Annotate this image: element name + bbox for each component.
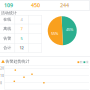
staticText: 12 bbox=[19, 45, 23, 50]
staticText: 在线 bbox=[3, 17, 11, 22]
button[interactable]: 450 bbox=[28, 1, 55, 10]
staticText: 0 bbox=[0, 81, 2, 85]
staticText: 活动统计 bbox=[1, 10, 17, 15]
staticText: 244 bbox=[60, 2, 69, 9]
staticText: 离线 bbox=[3, 26, 11, 31]
staticText: 量 bbox=[86, 61, 89, 64]
staticText: 5 bbox=[20, 36, 22, 41]
staticText: 20 bbox=[0, 67, 4, 70]
staticText: 数 bbox=[80, 61, 83, 64]
staticText: 450 bbox=[31, 2, 40, 9]
staticText: 告警 bbox=[3, 36, 11, 41]
staticText: 4 bbox=[20, 17, 22, 22]
staticText: 55% bbox=[51, 31, 58, 36]
staticText: 45% bbox=[66, 27, 73, 32]
staticText: 合计 bbox=[3, 45, 11, 50]
button[interactable]: 244 bbox=[56, 1, 89, 10]
staticText: 告警趋势统计 bbox=[5, 59, 29, 64]
staticText: 109 bbox=[4, 2, 13, 9]
staticText: 10 bbox=[0, 74, 4, 78]
button[interactable]: 109 bbox=[1, 1, 28, 10]
staticText: 7 bbox=[20, 26, 22, 31]
